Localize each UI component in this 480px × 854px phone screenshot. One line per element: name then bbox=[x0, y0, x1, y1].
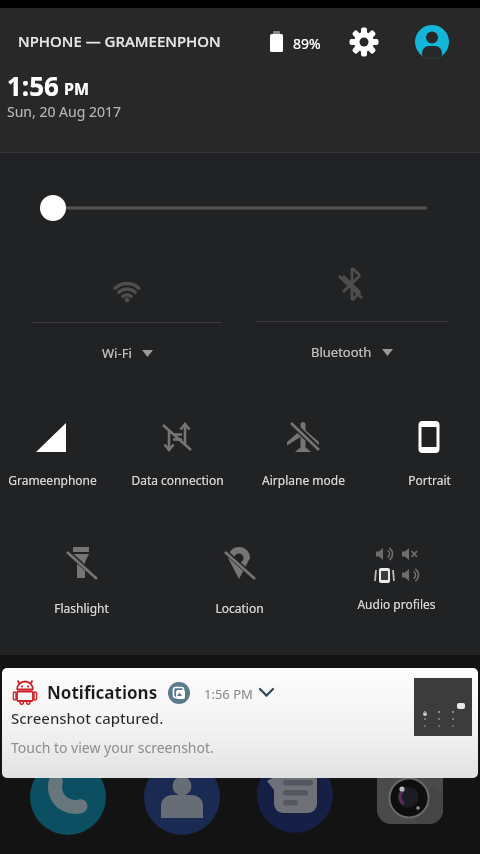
button[interactable]: Data connection bbox=[117, 420, 237, 488]
button[interactable]: Airplane mode bbox=[243, 420, 363, 488]
button[interactable]: Grameenphone bbox=[2, 420, 102, 488]
staticText: PM bbox=[64, 78, 90, 100]
staticText: Portrait bbox=[408, 472, 451, 488]
staticText: Flashlight bbox=[54, 600, 109, 616]
button[interactable] bbox=[349, 27, 379, 57]
button[interactable]: Location bbox=[179, 546, 299, 616]
staticText: 1:56 bbox=[7, 68, 59, 103]
staticText: 1:56 PM bbox=[204, 685, 253, 703]
staticText: Airplane mode bbox=[262, 472, 345, 488]
staticText: Wi-Fi bbox=[102, 344, 132, 362]
staticText: Bluetooth bbox=[311, 343, 372, 361]
button[interactable]: Flashlight bbox=[21, 546, 141, 616]
button[interactable] bbox=[257, 757, 333, 833]
button[interactable] bbox=[30, 759, 106, 835]
staticText: Touch to view your screenshot. bbox=[11, 738, 214, 757]
button[interactable]: Notifications bbox=[2, 668, 478, 778]
button[interactable] bbox=[377, 762, 443, 824]
staticText: NPHONE — GRAMEENPHON bbox=[18, 31, 221, 51]
button[interactable] bbox=[144, 759, 220, 835]
staticText: Audio profiles bbox=[357, 596, 436, 612]
button[interactable]: Bluetooth bbox=[256, 266, 448, 361]
staticText: Screenshot captured. bbox=[11, 708, 164, 728]
staticText: Notifications bbox=[47, 681, 158, 704]
staticText: 89% bbox=[293, 34, 321, 53]
button[interactable]: Wi-Fi bbox=[32, 266, 222, 362]
staticText: Grameenphone bbox=[8, 472, 97, 488]
staticText: Sun, 20 Aug 2017 bbox=[7, 102, 121, 121]
staticText: Location bbox=[215, 600, 264, 616]
button[interactable]: Audio profiles bbox=[336, 546, 456, 612]
button[interactable]: Portrait bbox=[369, 420, 480, 488]
staticText: Data connection bbox=[131, 472, 224, 488]
button[interactable] bbox=[415, 25, 449, 59]
